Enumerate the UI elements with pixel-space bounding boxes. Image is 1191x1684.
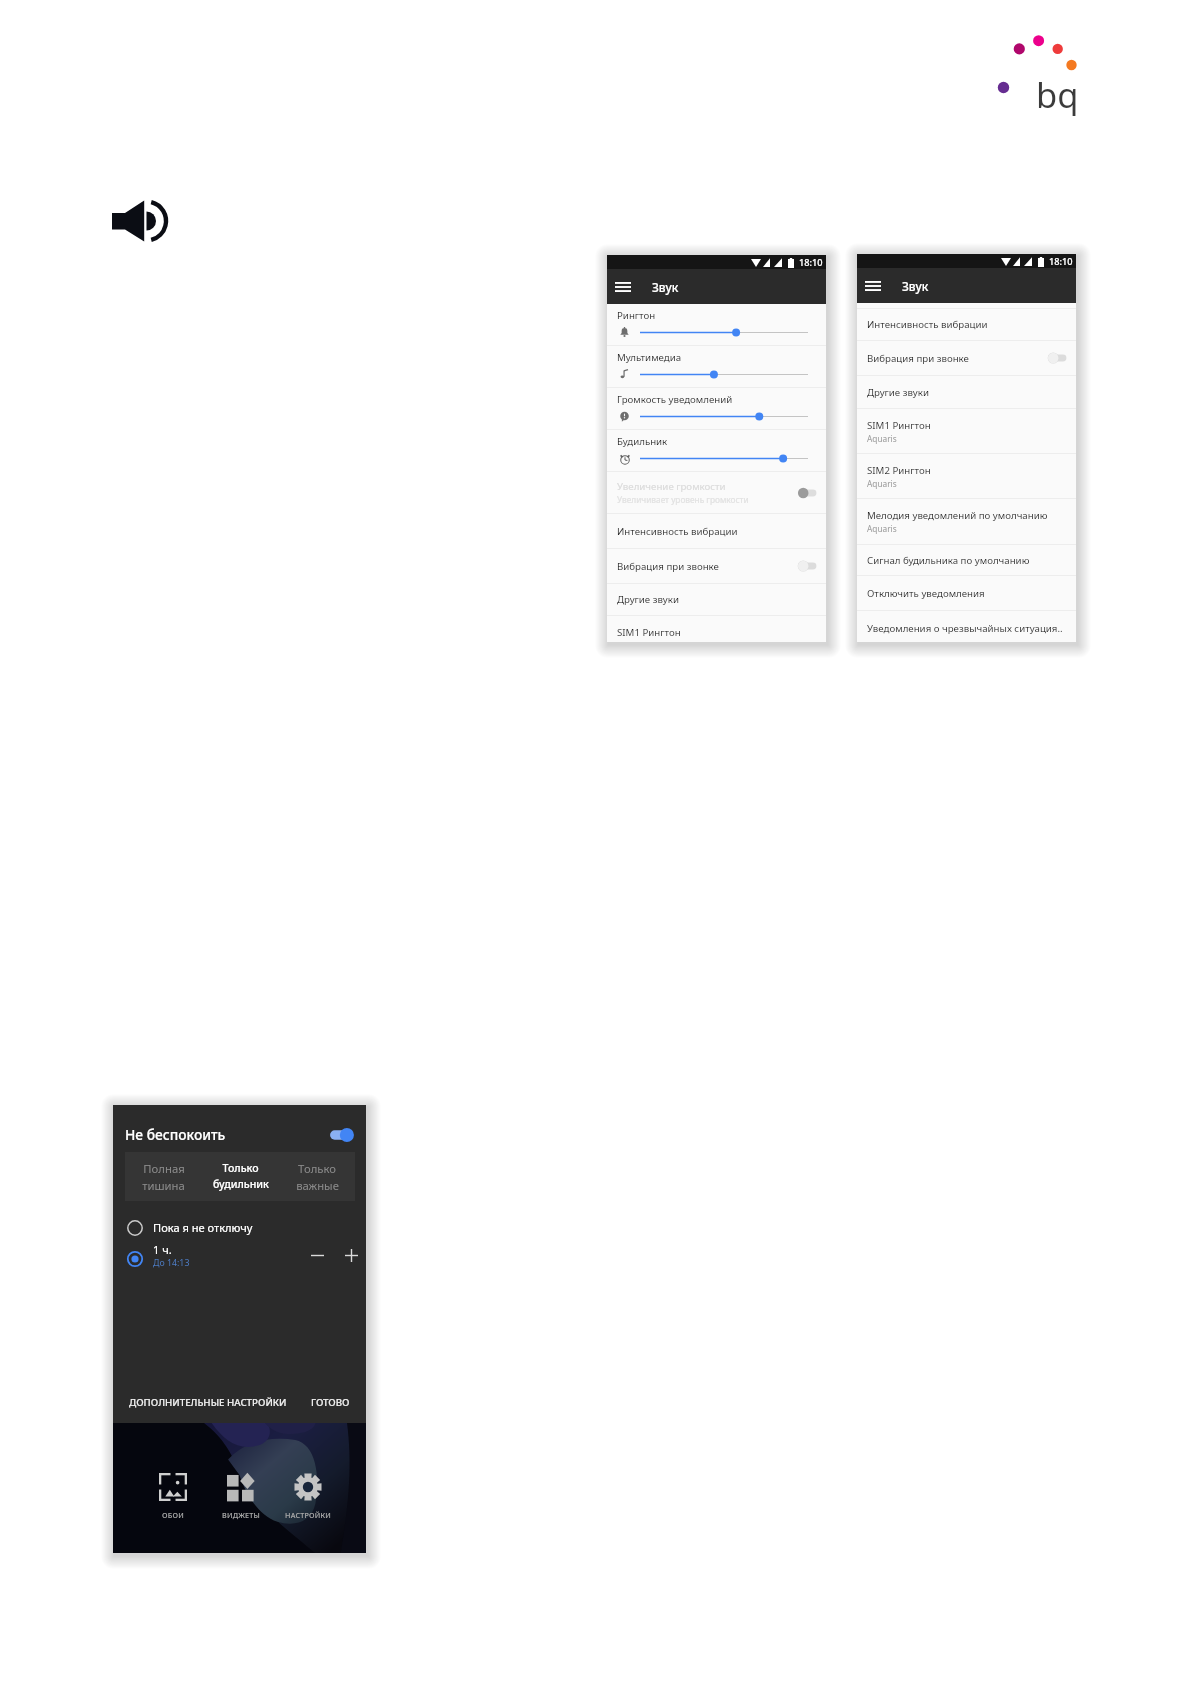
button[interactable]: SIM2 Рингтон	[857, 454, 1076, 498]
staticText: 18:10	[1049, 255, 1073, 268]
button[interactable]: Menu	[612, 276, 634, 298]
button[interactable]: Другие звуки	[857, 376, 1076, 408]
staticText: Мультимедиа	[617, 351, 682, 364]
staticText: Aquaris	[867, 523, 897, 534]
staticText: bq	[1036, 71, 1079, 118]
staticText: Уведомления о чрезвычайных ситуация..	[867, 622, 1063, 635]
staticText: ДОПОЛНИТЕЛЬНЫЕ НАСТРОЙКИ	[129, 1396, 287, 1409]
button[interactable]: ВИДЖЕТЫ	[214, 1473, 268, 1520]
staticText: Aquaris	[867, 478, 897, 489]
button[interactable]: Menu	[862, 275, 884, 297]
staticText: Вибрация при звонке	[617, 560, 719, 573]
button[interactable]: Отключить уведомления	[857, 576, 1076, 610]
button[interactable]: Вибрация при звонке	[798, 560, 818, 572]
staticText: SIM1 Рингтон	[867, 419, 931, 432]
staticText: Громкость уведомлений	[617, 393, 733, 406]
staticText: Только	[298, 1161, 336, 1176]
staticText: Мелодия уведомлений по умолчанию	[867, 509, 1048, 522]
button[interactable]: Мелодия уведомлений по умолчанию	[857, 499, 1076, 544]
button[interactable]: ДОПОЛНИТЕЛЬНЫЕ НАСТРОЙКИ	[129, 1396, 287, 1409]
button[interactable]: Уведомления о чрезвычайных ситуация..	[857, 611, 1076, 642]
button[interactable]: SIM1 Рингтон	[857, 409, 1076, 453]
staticText: Увеличение громкости	[617, 480, 726, 493]
staticText: Не беспокоить	[125, 1125, 226, 1144]
button[interactable]: Громкость уведомлений	[607, 388, 826, 429]
staticText: Интенсивность вибрации	[617, 525, 738, 538]
button[interactable]: Будильник	[607, 430, 826, 471]
button[interactable]: ОБОИ	[146, 1473, 200, 1520]
staticText: ВИДЖЕТЫ	[222, 1510, 260, 1520]
staticText: Aquaris	[867, 433, 897, 444]
button[interactable]: Только	[279, 1152, 355, 1201]
button[interactable]: Increase	[341, 1245, 361, 1265]
staticText: Отключить уведомления	[867, 587, 985, 600]
staticText: 18:10	[799, 256, 823, 269]
button[interactable]: Decrease	[307, 1245, 327, 1265]
staticText: Звук	[902, 278, 929, 294]
button[interactable]: Вибрация при звонке	[607, 549, 826, 583]
staticText: Вибрация при звонке	[867, 352, 969, 365]
button[interactable]: Вибрация при звонке	[857, 341, 1076, 375]
button[interactable]: Вибрация при звонке	[1048, 352, 1068, 364]
button[interactable]: 1 ч.	[125, 1241, 354, 1271]
staticText: SIM1 Рингтон	[617, 626, 681, 639]
staticText: До 14:13	[153, 1257, 190, 1269]
button[interactable]: Увеличение громкости	[607, 472, 826, 513]
staticText: важные	[296, 1178, 339, 1193]
staticText: будильник	[213, 1177, 269, 1191]
button[interactable]: Только	[202, 1152, 279, 1201]
staticText: Только	[222, 1161, 259, 1175]
staticText: Пока я не отключу	[153, 1220, 253, 1235]
staticText: 1 ч.	[153, 1242, 172, 1257]
button[interactable]: Сигнал будильника по умолчанию	[857, 545, 1076, 575]
staticText: SIM2 Рингтон	[867, 464, 931, 477]
staticText: ОБОИ	[162, 1510, 184, 1520]
button[interactable]: Do not disturb	[326, 1127, 355, 1143]
button[interactable]: ГОТОВО	[311, 1396, 350, 1409]
button[interactable]: SIM1 Рингтон	[607, 616, 826, 642]
button[interactable]: НАСТРОЙКИ	[281, 1473, 335, 1520]
staticText: Рингтон	[617, 309, 656, 322]
staticText: Интенсивность вибрации	[867, 318, 988, 331]
staticText: ГОТОВО	[311, 1396, 350, 1409]
button[interactable]: Другие звуки	[607, 584, 826, 615]
button[interactable]: Полная	[125, 1152, 202, 1201]
button[interactable]: Интенсивность вибрации	[857, 309, 1076, 340]
button[interactable]: Мультимедиа	[607, 346, 826, 387]
staticText: Будильник	[617, 435, 668, 448]
staticText: Другие звуки	[867, 386, 929, 399]
button[interactable]: Интенсивность вибрации	[607, 514, 826, 548]
staticText: Полная	[143, 1161, 185, 1176]
staticText: Звук	[652, 279, 679, 295]
button[interactable]: Рингтон	[607, 304, 826, 345]
button[interactable]: Пока я не отключу	[125, 1217, 354, 1239]
staticText: НАСТРОЙКИ	[285, 1510, 331, 1520]
staticText: Другие звуки	[617, 593, 679, 606]
staticText: Сигнал будильника по умолчанию	[867, 554, 1030, 567]
button[interactable]: Увеличение громкости	[798, 487, 818, 499]
staticText: тишина	[142, 1178, 185, 1193]
staticText: Увеличивает уровень громкости	[617, 494, 749, 505]
